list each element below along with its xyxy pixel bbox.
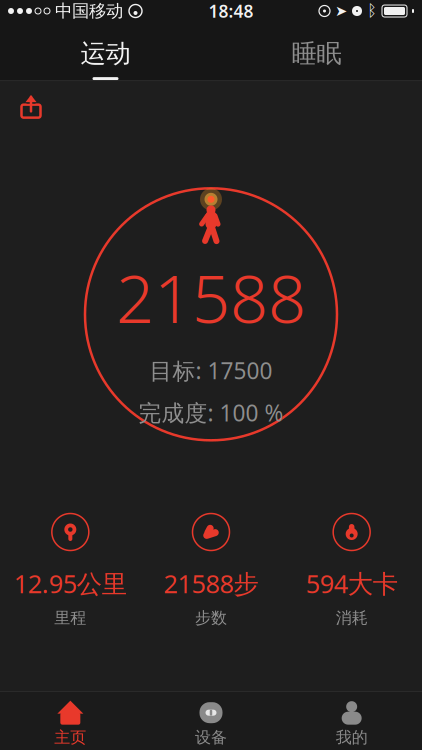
button[interactable]: 主页 bbox=[0, 692, 141, 750]
staticText: 里程 bbox=[54, 608, 86, 628]
button[interactable]: 12.95公里 bbox=[0, 513, 141, 628]
staticText: 完成度: 100 % bbox=[138, 398, 283, 428]
staticText: 消耗 bbox=[336, 608, 368, 628]
staticText: 21588 bbox=[116, 253, 306, 341]
staticText: 设备 bbox=[195, 728, 227, 747]
staticText: 主页 bbox=[54, 728, 86, 747]
staticText: 12.95公里 bbox=[14, 566, 127, 600]
staticText: 中国移动 bbox=[55, 0, 123, 22]
staticText: 21588步 bbox=[163, 566, 258, 600]
staticText: 运动 bbox=[80, 38, 130, 69]
button[interactable]: 21588步 bbox=[141, 513, 281, 628]
staticText: 594大卡 bbox=[306, 566, 398, 600]
staticText: ᛒ bbox=[367, 3, 377, 19]
button[interactable]: 594大卡 bbox=[281, 513, 422, 628]
staticText: 我的 bbox=[336, 728, 368, 747]
staticText: 18:48 bbox=[208, 0, 253, 22]
staticText: 步数 bbox=[195, 608, 227, 628]
button[interactable]: 我的 bbox=[281, 692, 422, 750]
staticText: 目标: 17500 bbox=[149, 355, 272, 386]
staticText: 睡眠 bbox=[291, 38, 341, 69]
button[interactable]: 运动 bbox=[0, 22, 211, 80]
button[interactable]: 分享 bbox=[14, 89, 48, 123]
staticText: ➤ bbox=[335, 3, 347, 19]
button[interactable]: 睡眠 bbox=[211, 22, 422, 80]
button[interactable]: 设备 bbox=[141, 692, 281, 750]
